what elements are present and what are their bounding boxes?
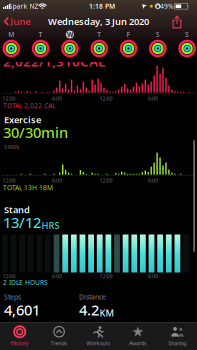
staticText: HRS: [42, 219, 60, 232]
staticText: Awards: [129, 340, 147, 347]
button[interactable]: S: [174, 30, 197, 58]
button[interactable]: Workouts: [79, 324, 117, 348]
staticText: M: [8, 30, 14, 39]
staticText: 6:00: [148, 273, 158, 280]
button[interactable]: T: [86, 30, 112, 58]
staticText: TOTAL 13H 18M: [3, 183, 53, 192]
staticText: 6:00: [148, 95, 158, 102]
button[interactable]: Sharing: [158, 324, 196, 348]
staticText: 6:00: [52, 95, 62, 102]
staticText: 12:00: [2, 95, 15, 102]
staticText: 1:18 PM: [89, 2, 115, 11]
staticText: S: [185, 30, 189, 39]
staticText: F: [126, 30, 130, 39]
staticText: 13/12: [3, 212, 41, 232]
button[interactable]: T: [28, 30, 54, 58]
staticText: S: [156, 30, 160, 39]
staticText: 4.2: [79, 300, 99, 319]
staticText: T: [39, 30, 43, 39]
staticText: 6:00: [52, 177, 62, 184]
staticText: 5 MIN: [4, 143, 19, 151]
staticText: Wednesday, 3 Jun 2020: [48, 15, 149, 28]
staticText: History: [11, 340, 29, 347]
staticText: Trends: [51, 340, 68, 347]
staticText: 6:00: [148, 177, 158, 184]
staticText: Distance: [79, 292, 106, 301]
staticText: Exercise: [4, 113, 41, 126]
button[interactable]: Trends: [40, 324, 78, 348]
button[interactable]: S: [145, 30, 171, 58]
staticText: Spark NZ: [8, 2, 38, 11]
button[interactable]: Awards: [119, 324, 157, 348]
staticText: W: [67, 30, 73, 39]
staticText: 12:00: [99, 177, 112, 184]
staticText: 12:00: [2, 273, 15, 280]
staticText: 4,601: [4, 300, 40, 319]
staticText: 12:00: [2, 177, 15, 184]
staticText: 12:00: [99, 95, 112, 102]
button[interactable]: History: [1, 324, 39, 348]
staticText: Sharing: [168, 340, 186, 347]
staticText: KM: [100, 307, 115, 319]
staticText: Workouts: [86, 340, 110, 347]
staticText: June: [10, 15, 30, 28]
staticText: 12:00: [99, 273, 112, 280]
button[interactable]: June: [4, 14, 30, 28]
button[interactable]: W: [57, 30, 83, 58]
staticText: Steps: [4, 292, 21, 301]
staticText: 49%: [160, 2, 174, 11]
staticText: 30/30min: [3, 122, 68, 142]
staticText: T: [97, 30, 101, 39]
staticText: 2,022/1,310CAL: [3, 52, 105, 70]
button[interactable]: Share: [172, 15, 181, 28]
staticText: Stand: [4, 203, 30, 216]
staticText: 2 IDLE HOURS: [3, 278, 48, 287]
staticText: TOTAL 2,022 CAL: [3, 101, 55, 110]
button[interactable]: F: [115, 30, 141, 58]
staticText: 6:00: [52, 273, 62, 280]
button[interactable]: M: [0, 30, 24, 58]
